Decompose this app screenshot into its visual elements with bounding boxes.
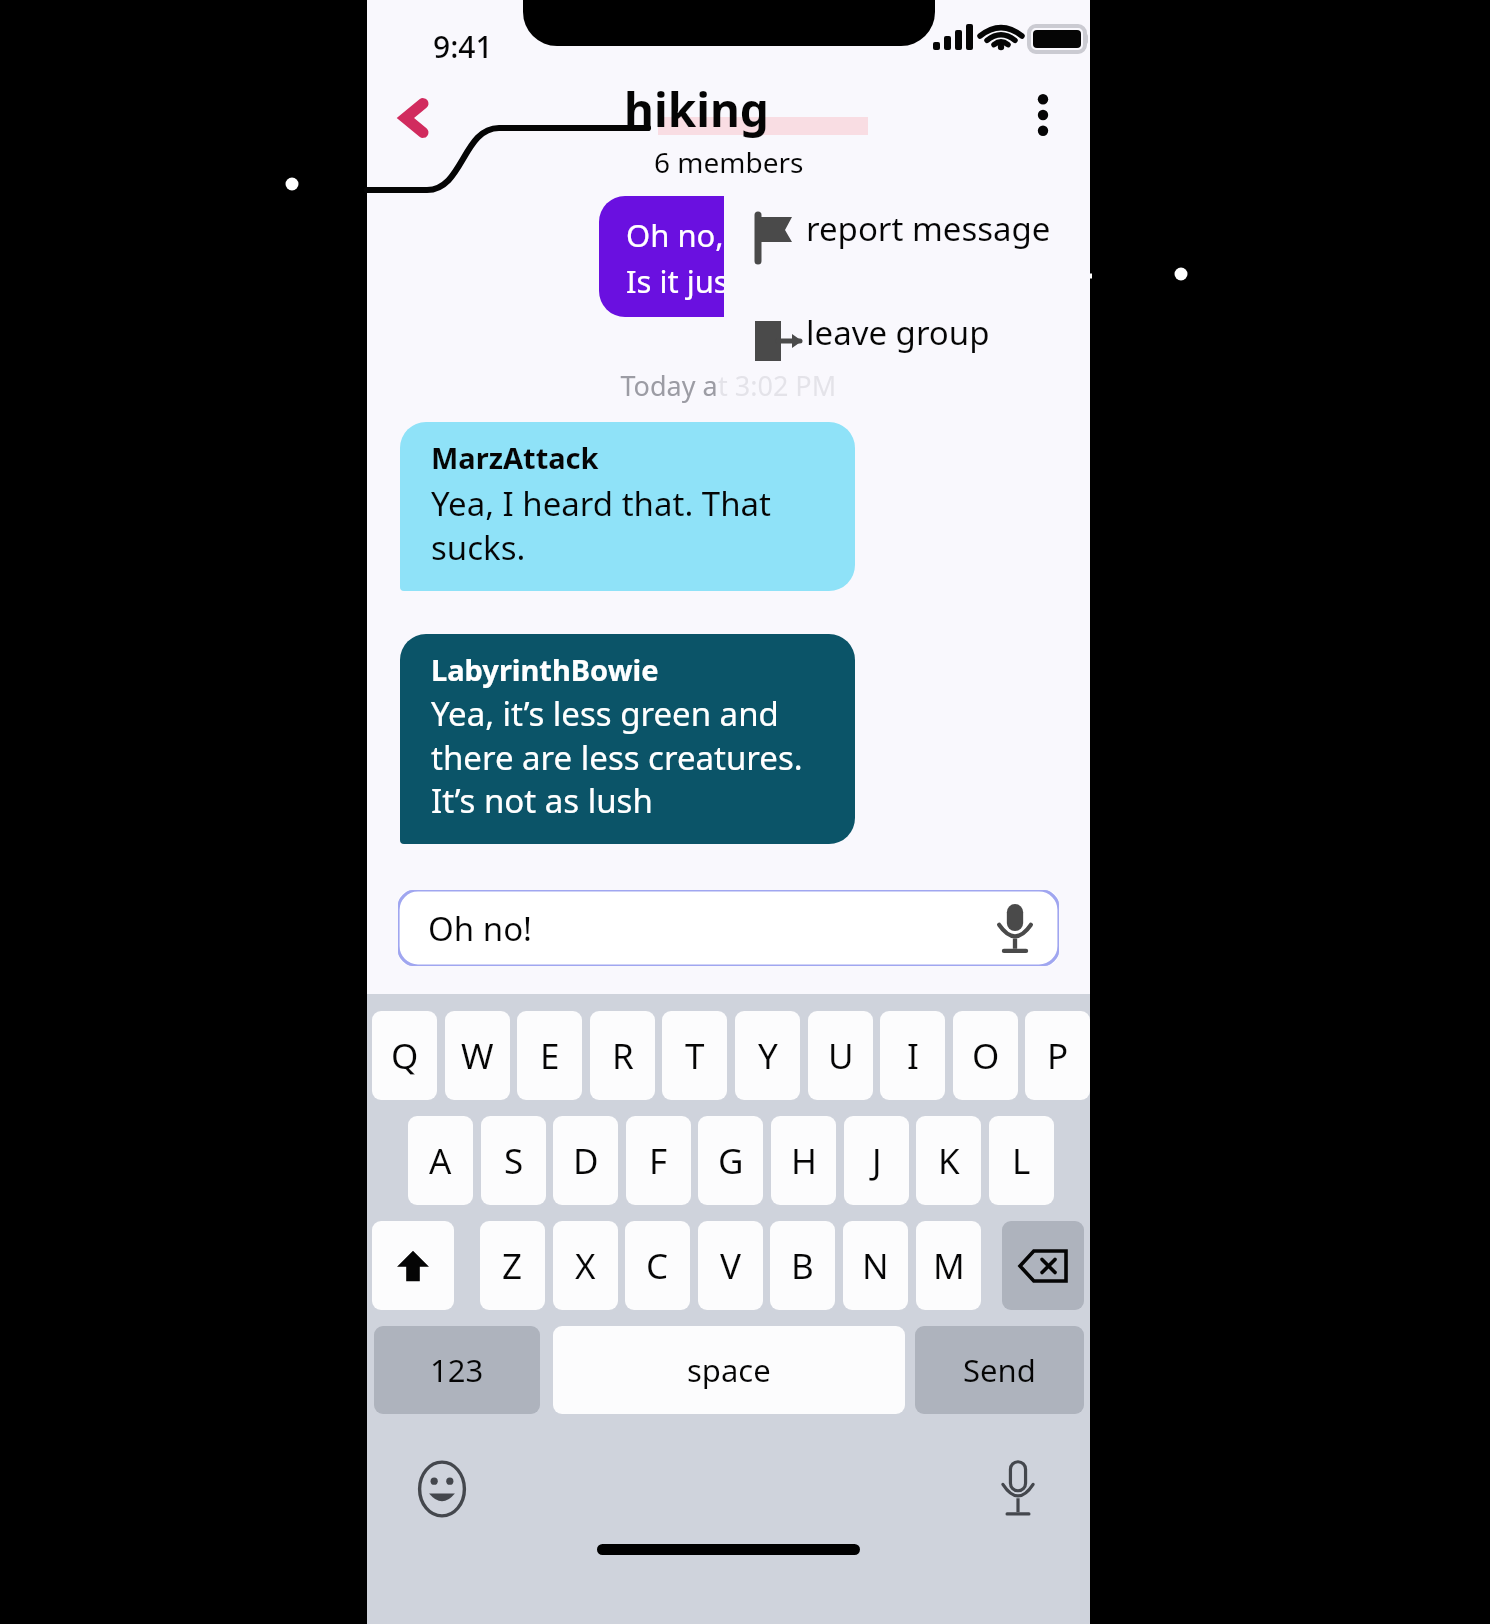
- staticText: LabyrinthBowie: [431, 650, 659, 689]
- staticText: L: [1012, 1137, 1031, 1185]
- button[interactable]: Emoji keyboard: [411, 1458, 473, 1520]
- button[interactable]: Backspace: [1002, 1221, 1084, 1310]
- button[interactable]: G: [698, 1116, 763, 1205]
- staticText: N: [862, 1242, 889, 1290]
- button[interactable]: B: [770, 1221, 835, 1310]
- button[interactable]: L: [989, 1116, 1054, 1205]
- button[interactable]: Shift: [372, 1221, 454, 1310]
- staticText: Oh no,: [626, 214, 724, 256]
- button[interactable]: O: [953, 1011, 1018, 1100]
- button[interactable]: D: [553, 1116, 618, 1205]
- button[interactable]: MarzAttack: [400, 422, 855, 591]
- staticText: S: [504, 1137, 524, 1185]
- staticText: E: [540, 1032, 560, 1080]
- staticText: leave group: [806, 310, 990, 355]
- staticText: D: [573, 1137, 599, 1185]
- staticText: report message: [806, 206, 1051, 251]
- button[interactable]: Z: [480, 1221, 545, 1310]
- button[interactable]: H: [771, 1116, 836, 1205]
- button[interactable]: A: [408, 1116, 473, 1205]
- staticText: W: [461, 1032, 494, 1080]
- button[interactable]: Back: [379, 82, 451, 154]
- staticText: Q: [391, 1032, 419, 1080]
- staticText: 9:41: [433, 26, 493, 67]
- staticText: T: [685, 1032, 705, 1080]
- staticText: Yea, I heard that. That sucks.: [431, 481, 831, 569]
- staticText: P: [1047, 1032, 1069, 1080]
- staticText: hiking: [624, 78, 769, 141]
- button[interactable]: X: [553, 1221, 618, 1310]
- staticText: J: [872, 1137, 882, 1185]
- staticText: O: [972, 1032, 1000, 1080]
- button[interactable]: Q: [372, 1011, 437, 1100]
- button[interactable]: C: [625, 1221, 690, 1310]
- button[interactable]: W: [445, 1011, 510, 1100]
- staticText: A: [429, 1137, 452, 1185]
- staticText: U: [828, 1032, 854, 1080]
- staticText: G: [718, 1137, 744, 1185]
- staticText: Oh no!: [428, 906, 532, 951]
- button[interactable]: Oh no,: [599, 196, 724, 317]
- button[interactable]: K: [916, 1116, 981, 1205]
- staticText: 123: [430, 1349, 484, 1391]
- button[interactable]: S: [481, 1116, 546, 1205]
- button[interactable]: R: [590, 1011, 655, 1100]
- button[interactable]: N: [843, 1221, 908, 1310]
- staticText: MarzAttack: [431, 438, 599, 477]
- button[interactable]: V: [698, 1221, 763, 1310]
- button[interactable]: report message: [752, 206, 1051, 251]
- button[interactable]: U: [808, 1011, 873, 1100]
- staticText: I: [907, 1032, 919, 1080]
- button[interactable]: Send: [915, 1326, 1084, 1414]
- staticText: Z: [502, 1242, 523, 1290]
- staticText: V: [720, 1242, 742, 1290]
- staticText: B: [791, 1242, 814, 1290]
- staticText: Today a: [620, 367, 718, 404]
- button[interactable]: 123: [374, 1326, 540, 1414]
- button[interactable]: Voice input: [989, 902, 1041, 954]
- staticText: M: [933, 1242, 965, 1290]
- staticText: Y: [758, 1032, 778, 1080]
- button[interactable]: I: [880, 1011, 945, 1100]
- button[interactable]: P: [1025, 1011, 1090, 1100]
- staticText: C: [646, 1242, 669, 1290]
- button[interactable]: T: [662, 1011, 727, 1100]
- staticText: F: [649, 1137, 668, 1185]
- staticText: Yea, it’s less green and there are less …: [431, 691, 839, 822]
- staticText: K: [938, 1137, 960, 1185]
- staticText: R: [612, 1032, 634, 1080]
- button[interactable]: Voice typing: [987, 1458, 1049, 1520]
- button[interactable]: E: [517, 1011, 582, 1100]
- staticText: Send: [963, 1349, 1036, 1391]
- staticText: space: [687, 1349, 771, 1391]
- staticText: H: [791, 1137, 817, 1185]
- button[interactable]: J: [844, 1116, 909, 1205]
- button[interactable]: space: [553, 1326, 905, 1414]
- staticText: Is it just: [626, 260, 724, 302]
- button[interactable]: Y: [735, 1011, 800, 1100]
- button[interactable]: Oh no!: [398, 890, 1059, 966]
- staticText: 6 members: [654, 143, 804, 181]
- button[interactable]: LabyrinthBowie: [400, 634, 855, 844]
- staticText: X: [575, 1242, 596, 1290]
- button[interactable]: M: [916, 1221, 981, 1310]
- button[interactable]: More options: [1010, 82, 1076, 148]
- staticText: t 3:02 PM: [718, 367, 837, 404]
- button[interactable]: leave group: [752, 310, 990, 355]
- button[interactable]: F: [626, 1116, 691, 1205]
